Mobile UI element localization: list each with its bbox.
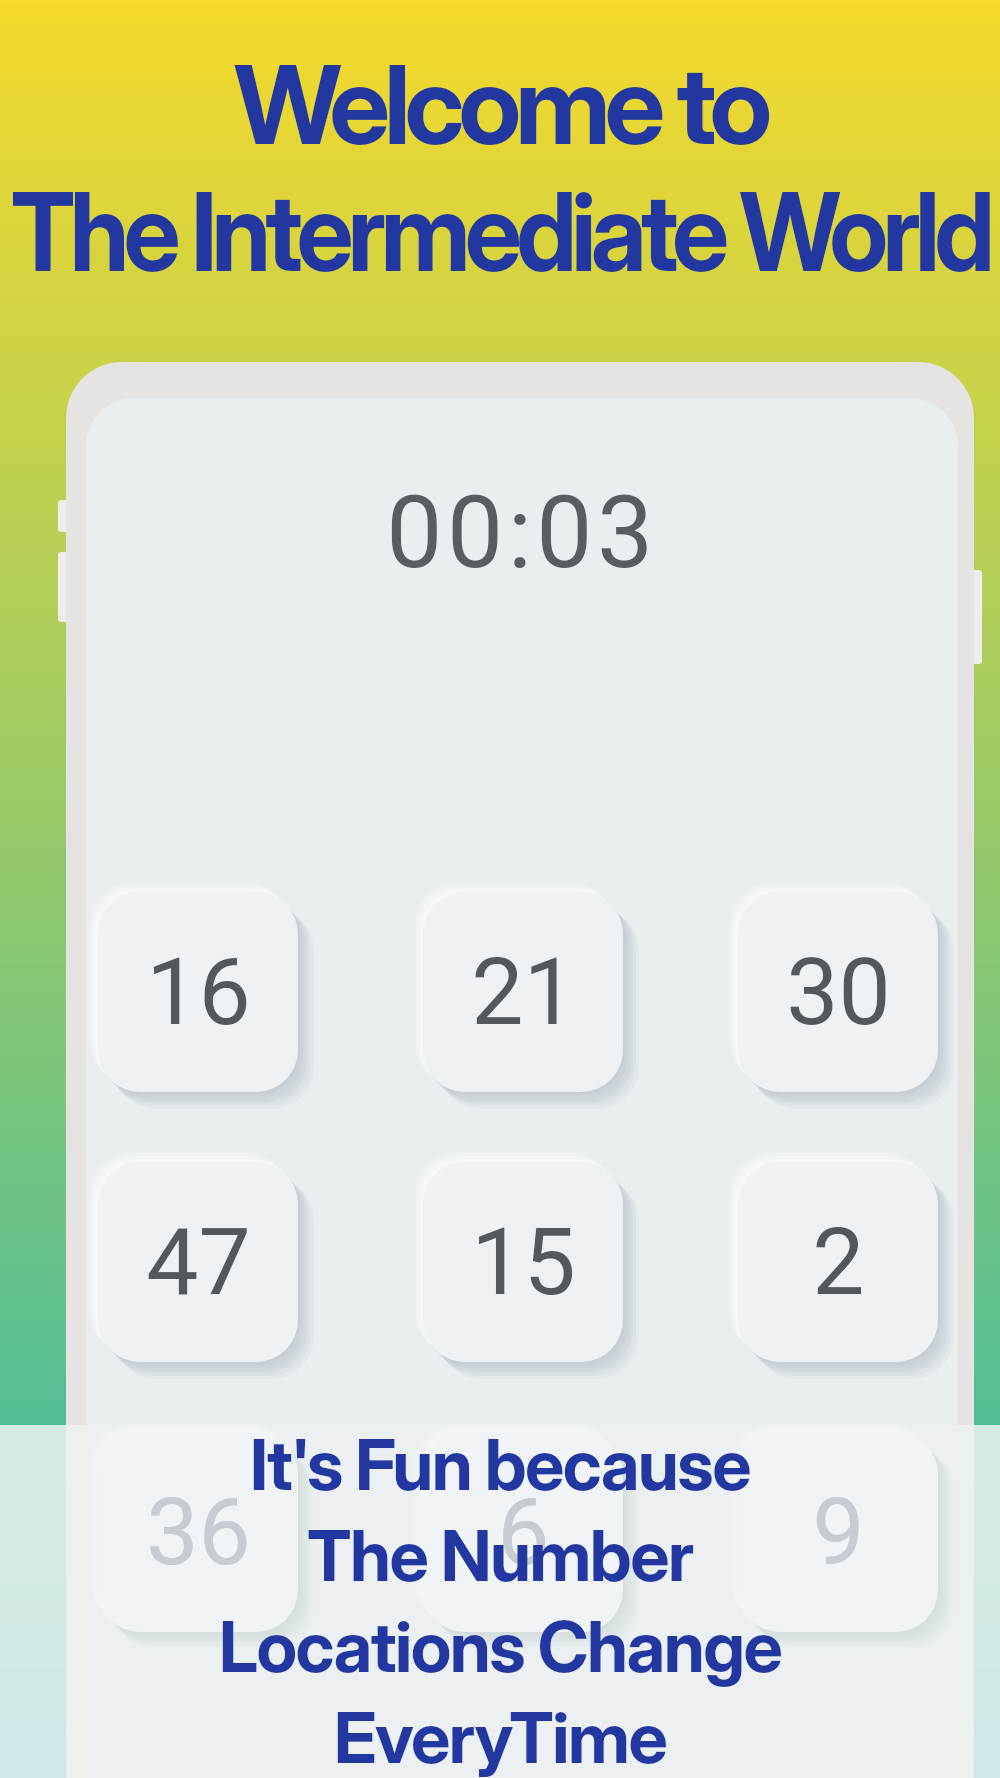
staticText: 30: [786, 938, 891, 1047]
staticText: 21: [471, 938, 576, 1047]
staticText: 2: [812, 1208, 865, 1317]
button[interactable]: 21: [423, 892, 623, 1092]
button[interactable]: 6: [423, 1432, 623, 1632]
button[interactable]: 30: [738, 892, 938, 1092]
staticText: The Number: [307, 1513, 693, 1598]
button[interactable]: 9: [738, 1432, 938, 1632]
staticText: Locations Change: [219, 1604, 782, 1689]
button[interactable]: 2: [738, 1162, 938, 1362]
staticText: 36: [146, 1478, 251, 1587]
button[interactable]: 36: [98, 1432, 298, 1632]
staticText: 6: [497, 1478, 550, 1587]
staticText: 15: [471, 1208, 576, 1317]
staticText: It's Fun because: [250, 1422, 751, 1507]
staticText: 16: [146, 938, 251, 1047]
staticText: 00:03: [86, 474, 958, 591]
button[interactable]: 15: [423, 1162, 623, 1362]
button[interactable]: 47: [98, 1162, 298, 1362]
staticText: The Intermediate World: [0, 166, 1000, 297]
staticText: 47: [146, 1208, 251, 1317]
button[interactable]: 16: [98, 892, 298, 1092]
staticText: Welcome to: [0, 39, 1000, 170]
staticText: EveryTime: [334, 1695, 667, 1778]
staticText: 9: [812, 1478, 865, 1587]
